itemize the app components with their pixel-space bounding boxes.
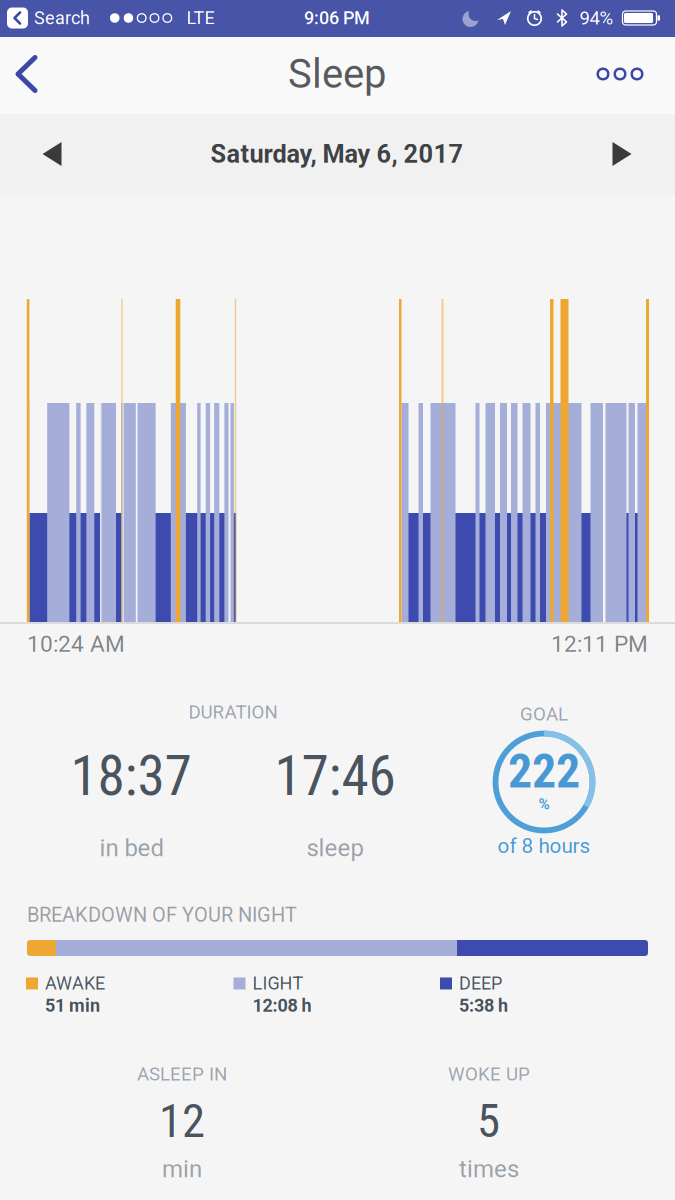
staticText: LTE xyxy=(187,7,215,29)
button[interactable]: Next day xyxy=(612,142,631,166)
staticText: Sleep xyxy=(288,51,386,97)
staticText: in bed xyxy=(99,834,164,862)
button[interactable]: Back to Search xyxy=(7,7,90,29)
button[interactable]: Previous day xyxy=(42,142,61,166)
staticText: 9:06 PM xyxy=(304,7,370,29)
staticText: of 8 hours xyxy=(497,834,590,858)
staticText: min xyxy=(162,1155,202,1183)
staticText: GOAL xyxy=(520,703,568,725)
staticText: 94% xyxy=(579,7,613,29)
staticText: 51 min xyxy=(45,995,100,1016)
staticText: % xyxy=(538,795,549,813)
staticText: 5:38 h xyxy=(459,995,508,1016)
staticText: ASLEEP IN xyxy=(137,1063,227,1085)
staticText: 12 xyxy=(159,1094,205,1148)
button[interactable]: More options xyxy=(598,69,642,79)
staticText: 222 xyxy=(508,743,580,799)
staticText: 10:24 AM xyxy=(27,631,125,657)
staticText: DURATION xyxy=(188,701,277,723)
staticText: LIGHT xyxy=(252,973,303,994)
staticText: sleep xyxy=(306,834,363,862)
staticText: AWAKE xyxy=(45,973,105,994)
staticText: 12:11 PM xyxy=(551,631,648,657)
staticText: times xyxy=(459,1155,519,1183)
staticText: 17:46 xyxy=(274,744,395,808)
staticText: DEEP xyxy=(459,973,502,994)
button[interactable]: Back xyxy=(14,54,40,93)
staticText: Search xyxy=(34,7,90,29)
staticText: 12:08 h xyxy=(252,995,311,1016)
staticText: Saturday, May 6, 2017 xyxy=(210,139,463,169)
staticText: 18:37 xyxy=(70,744,191,808)
staticText: BREAKDOWN OF YOUR NIGHT xyxy=(27,903,297,927)
staticText: WOKE UP xyxy=(448,1063,530,1085)
staticText: 5 xyxy=(477,1094,500,1148)
